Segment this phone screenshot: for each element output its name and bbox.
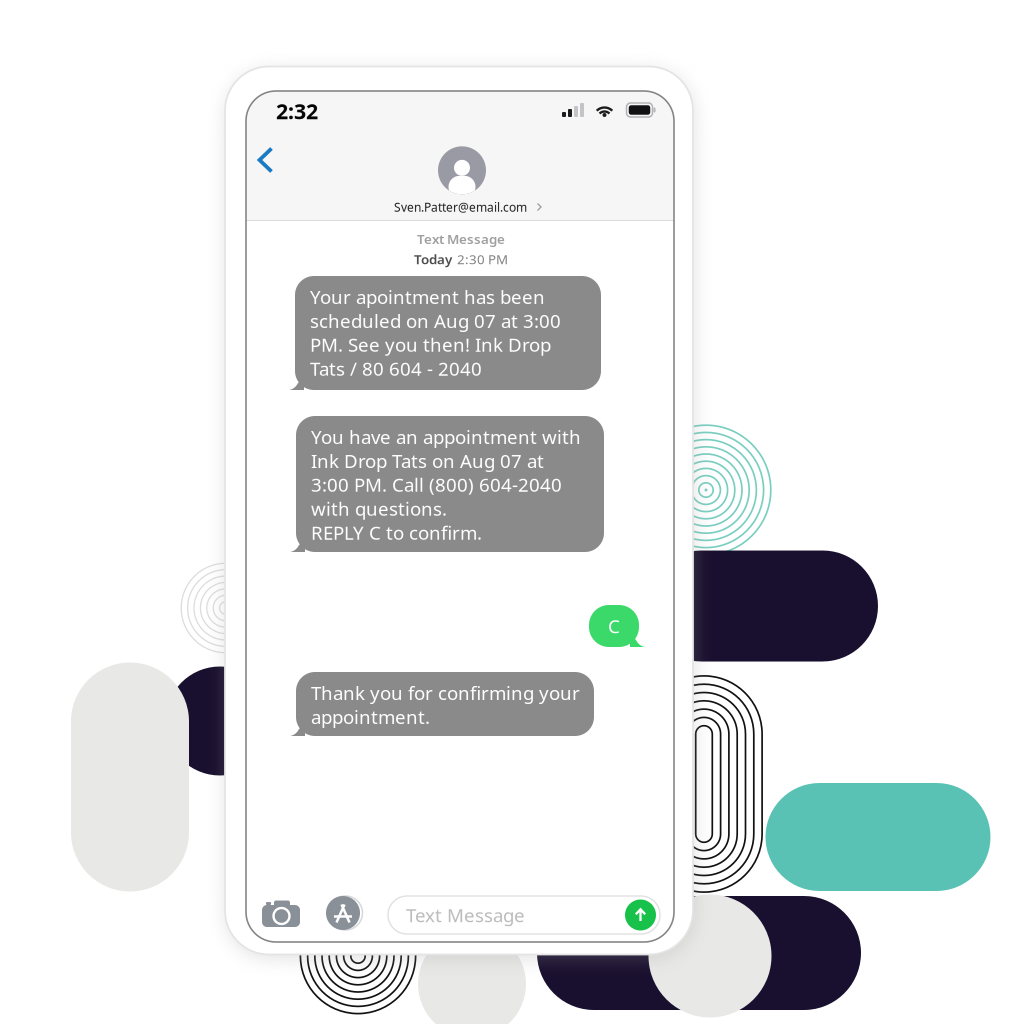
staticText: 2:30 PM: [457, 250, 508, 268]
staticText: Ink Drop Tats on Aug 07 at: [311, 448, 544, 473]
staticText: with questions.: [311, 496, 447, 521]
staticText: Sven.Patter@email.com: [394, 199, 527, 215]
staticText: scheduled on Aug 07 at 3:00: [310, 308, 561, 333]
button[interactable]: Back: [242, 132, 287, 187]
staticText: Thank you for confirming your: [311, 680, 580, 705]
staticText: You have an appointment with: [311, 424, 581, 449]
staticText: Today: [414, 250, 452, 268]
button[interactable]: Camera: [256, 892, 306, 933]
button[interactable]: Apps: [320, 890, 365, 935]
staticText: Text Message: [417, 230, 505, 248]
staticText: Text Message: [406, 902, 525, 928]
staticText: PM. See you then! Ink Drop: [310, 332, 551, 357]
staticText: C: [608, 613, 620, 639]
staticText: appointment.: [311, 704, 430, 729]
staticText: REPLY C to confirm.: [311, 520, 482, 545]
button[interactable]: Send: [625, 899, 656, 930]
staticText: Your apointment has been: [310, 284, 545, 309]
staticText: Tats / 80 604 - 2040: [310, 356, 482, 381]
staticText: 3:00 PM. Call (800) 604-2040: [311, 472, 562, 497]
staticText: 2:32: [276, 96, 318, 126]
button[interactable]: Conversation details: [376, 144, 548, 218]
